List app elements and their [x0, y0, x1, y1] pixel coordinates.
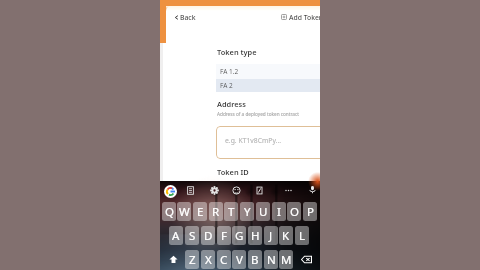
staticText: Address — [217, 99, 246, 109]
button[interactable]: P — [303, 202, 317, 221]
staticText: P — [307, 204, 314, 220]
staticText: Back — [180, 13, 196, 22]
staticText: L — [299, 228, 306, 244]
staticText: R — [212, 204, 220, 220]
staticText: G — [235, 228, 244, 244]
button[interactable]: R — [209, 202, 223, 221]
button[interactable]: A — [169, 226, 183, 245]
button[interactable]: I — [272, 202, 286, 221]
staticText: e.g. KT1v8CmPy... — [225, 136, 282, 145]
staticText: N — [267, 252, 276, 268]
button[interactable]: Back — [172, 10, 198, 24]
staticText: X — [205, 252, 212, 268]
staticText: J — [269, 228, 273, 244]
button[interactable]: Google — [164, 185, 177, 198]
staticText: E — [197, 204, 204, 220]
button[interactable]: e.g. KT1v8CmPy... — [216, 126, 320, 159]
button[interactable]: Y — [240, 202, 254, 221]
button[interactable]: Shift — [162, 250, 184, 269]
staticText: W — [179, 204, 190, 220]
staticText: FA 1.2 — [220, 67, 239, 76]
staticText: H — [251, 228, 260, 244]
staticText: T — [228, 204, 235, 220]
button[interactable]: V — [232, 250, 246, 269]
button[interactable]: O — [287, 202, 301, 221]
button[interactable]: K — [279, 226, 293, 245]
button[interactable]: H — [248, 226, 262, 245]
staticText: M — [281, 252, 292, 268]
button[interactable]: F — [217, 226, 231, 245]
staticText: O — [290, 204, 299, 220]
button[interactable]: B — [248, 250, 262, 269]
button[interactable]: G — [232, 226, 246, 245]
button[interactable]: Clipboard — [186, 186, 195, 195]
button[interactable]: Q — [162, 202, 176, 221]
staticText: Z — [189, 252, 196, 268]
staticText: Q — [165, 204, 174, 220]
staticText: F — [221, 228, 227, 244]
staticText: D — [204, 228, 213, 244]
staticText: C — [220, 252, 228, 268]
button[interactable]: E — [193, 202, 207, 221]
staticText: Add Token — [289, 13, 320, 22]
button[interactable]: More — [284, 186, 293, 195]
staticText: Address of a deployed token contract — [217, 111, 299, 117]
button[interactable]: FA 1.2 — [216, 64, 320, 79]
button[interactable]: Translate — [255, 186, 264, 195]
button[interactable]: Settings — [210, 186, 219, 195]
button[interactable]: Add Token — [279, 10, 320, 24]
staticText: FA 2 — [220, 81, 233, 90]
staticText: Token ID — [217, 167, 249, 177]
button[interactable]: X — [201, 250, 215, 269]
staticText: I — [277, 204, 281, 220]
button[interactable]: Voice input — [308, 185, 317, 194]
button[interactable]: N — [264, 250, 278, 269]
button[interactable]: D — [201, 226, 215, 245]
staticText: K — [282, 228, 290, 244]
button[interactable]: FA 2 — [216, 79, 320, 92]
staticText: V — [236, 252, 243, 268]
staticText: B — [251, 252, 259, 268]
staticText: A — [172, 228, 180, 244]
button[interactable]: S — [185, 226, 199, 245]
button[interactable]: L — [295, 226, 309, 245]
button[interactable]: Z — [185, 250, 199, 269]
button[interactable]: J — [264, 226, 278, 245]
button[interactable]: M — [279, 250, 293, 269]
button[interactable]: Backspace — [295, 250, 317, 269]
button[interactable]: U — [256, 202, 270, 221]
staticText: Token type — [217, 47, 257, 57]
button[interactable]: C — [217, 250, 231, 269]
button[interactable]: Stickers — [232, 186, 241, 195]
staticText: Y — [244, 204, 251, 220]
button[interactable]: W — [177, 202, 191, 221]
staticText: S — [189, 228, 196, 244]
staticText: U — [259, 204, 268, 220]
button[interactable]: T — [224, 202, 238, 221]
